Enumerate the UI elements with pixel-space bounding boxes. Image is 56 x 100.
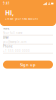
staticText: Email bbox=[3, 36, 9, 39]
staticText: you@example.com bbox=[3, 40, 26, 44]
staticText: Name bbox=[3, 27, 10, 30]
staticText: 9:41 bbox=[3, 2, 10, 5]
staticText: Phone bbox=[3, 45, 13, 48]
staticText: +1 555 000 0000 bbox=[3, 49, 30, 53]
staticText: Your full name bbox=[3, 31, 23, 35]
staticText: Create your new account bbox=[5, 17, 38, 21]
staticText: Hi, bbox=[5, 8, 14, 17]
staticText: Sign up bbox=[20, 62, 36, 67]
button[interactable]: Sign up bbox=[3, 61, 53, 69]
